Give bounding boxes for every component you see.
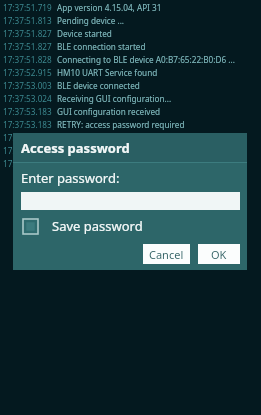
staticText: HM10 UART Service found bbox=[57, 67, 158, 78]
staticText: Cancel bbox=[149, 247, 184, 262]
staticText: BLE connection started bbox=[57, 41, 146, 52]
staticText: 17:37:51.827 bbox=[3, 28, 52, 39]
staticText: Enter password: bbox=[21, 169, 120, 187]
staticText: 17:37:53.183 bbox=[3, 106, 52, 117]
staticText: GUI configuration received bbox=[57, 106, 161, 117]
staticText: Access password bbox=[21, 139, 130, 157]
button[interactable]: Save password bbox=[21, 217, 143, 235]
staticText: BLE device connected bbox=[57, 80, 140, 91]
staticText: 17:37:52.915 bbox=[3, 67, 52, 78]
staticText: 17:37:53.183 bbox=[3, 119, 52, 130]
staticText: Connecting to BLE device A0:B7:65:22:B0:… bbox=[57, 54, 235, 65]
staticText: App version 4.15.04, API 31 bbox=[57, 2, 162, 13]
staticText: Receiving GUI configuration... bbox=[57, 93, 172, 104]
staticText: 17:37:53.024 bbox=[3, 93, 52, 104]
staticText: Pending device ... bbox=[57, 15, 125, 26]
staticText: 17:37:51.828 bbox=[3, 54, 52, 65]
staticText: RETRY: access password required bbox=[57, 119, 185, 130]
staticText: 17:37:53.003 bbox=[3, 80, 52, 91]
staticText: 17:37:53.204 bbox=[3, 158, 52, 169]
staticText: 17:37:51.719 bbox=[3, 2, 52, 13]
button[interactable]: OK bbox=[198, 244, 240, 264]
button[interactable]: Cancel bbox=[143, 244, 190, 264]
staticText: 17:37:53.184 bbox=[3, 132, 52, 143]
staticText: Device started bbox=[57, 28, 112, 39]
staticText: OK bbox=[211, 247, 227, 262]
staticText: Disconnect bbox=[57, 145, 100, 156]
staticText: Save password bbox=[52, 217, 143, 235]
staticText: 17:37:51.827 bbox=[3, 41, 52, 52]
staticText: Password request bbox=[57, 132, 126, 143]
staticText: 17:37:51.813 bbox=[3, 15, 52, 26]
staticText: 17:37:53.204 bbox=[3, 145, 52, 156]
